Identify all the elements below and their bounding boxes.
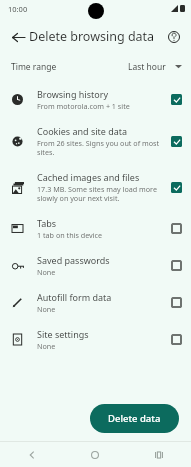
staticText: None	[37, 341, 56, 351]
button[interactable]: Saved passwords	[0, 247, 191, 284]
button[interactable]: Unchecked	[171, 260, 182, 271]
staticText: Delete browsing data	[29, 28, 155, 45]
button[interactable]: Delete data	[90, 404, 179, 433]
button[interactable]: Unchecked	[171, 297, 182, 308]
button[interactable]: Tabs	[0, 210, 191, 247]
button[interactable]: Back	[4, 23, 32, 51]
button[interactable]: Browsing history	[0, 81, 191, 118]
staticText: Cookies and site data	[37, 125, 128, 137]
staticText: 17.3 MB. Some sites may load more slowly…	[37, 184, 163, 203]
button[interactable]: Home	[63, 442, 127, 467]
button[interactable]: Back	[0, 442, 63, 467]
button[interactable]: Help	[161, 24, 187, 50]
staticText: Autofill form data	[37, 291, 112, 303]
staticText: Last hour	[128, 61, 166, 73]
button[interactable]: Recent apps	[127, 442, 191, 467]
staticText: Browsing history	[37, 88, 108, 100]
staticText: From motorola.com + 1 site	[37, 101, 130, 111]
button[interactable]: Unchecked	[171, 223, 182, 234]
staticText: Time range	[11, 61, 57, 73]
button[interactable]: Site settings	[0, 321, 191, 358]
staticText: 1 tab on this device	[37, 230, 103, 240]
staticText: Saved passwords	[37, 254, 110, 266]
button[interactable]: Time range	[0, 56, 191, 77]
staticText: None	[37, 304, 56, 314]
staticText: Tabs	[37, 217, 57, 229]
button[interactable]: Cached images and files	[0, 164, 191, 210]
button[interactable]: Cookies and site data	[0, 118, 191, 164]
staticText: Site settings	[37, 328, 89, 340]
button[interactable]: Unchecked	[171, 334, 182, 345]
button[interactable]: Checked	[171, 182, 182, 193]
staticText: None	[37, 267, 56, 277]
staticText: 10:00	[8, 4, 28, 14]
staticText: Cached images and files	[37, 171, 140, 183]
button[interactable]: Checked	[171, 136, 182, 147]
staticText: Delete data	[108, 412, 161, 425]
button[interactable]: Checked	[171, 94, 182, 105]
staticText: From 26 sites. Signs you out of most sit…	[37, 138, 163, 157]
button[interactable]: Autofill form data	[0, 284, 191, 321]
